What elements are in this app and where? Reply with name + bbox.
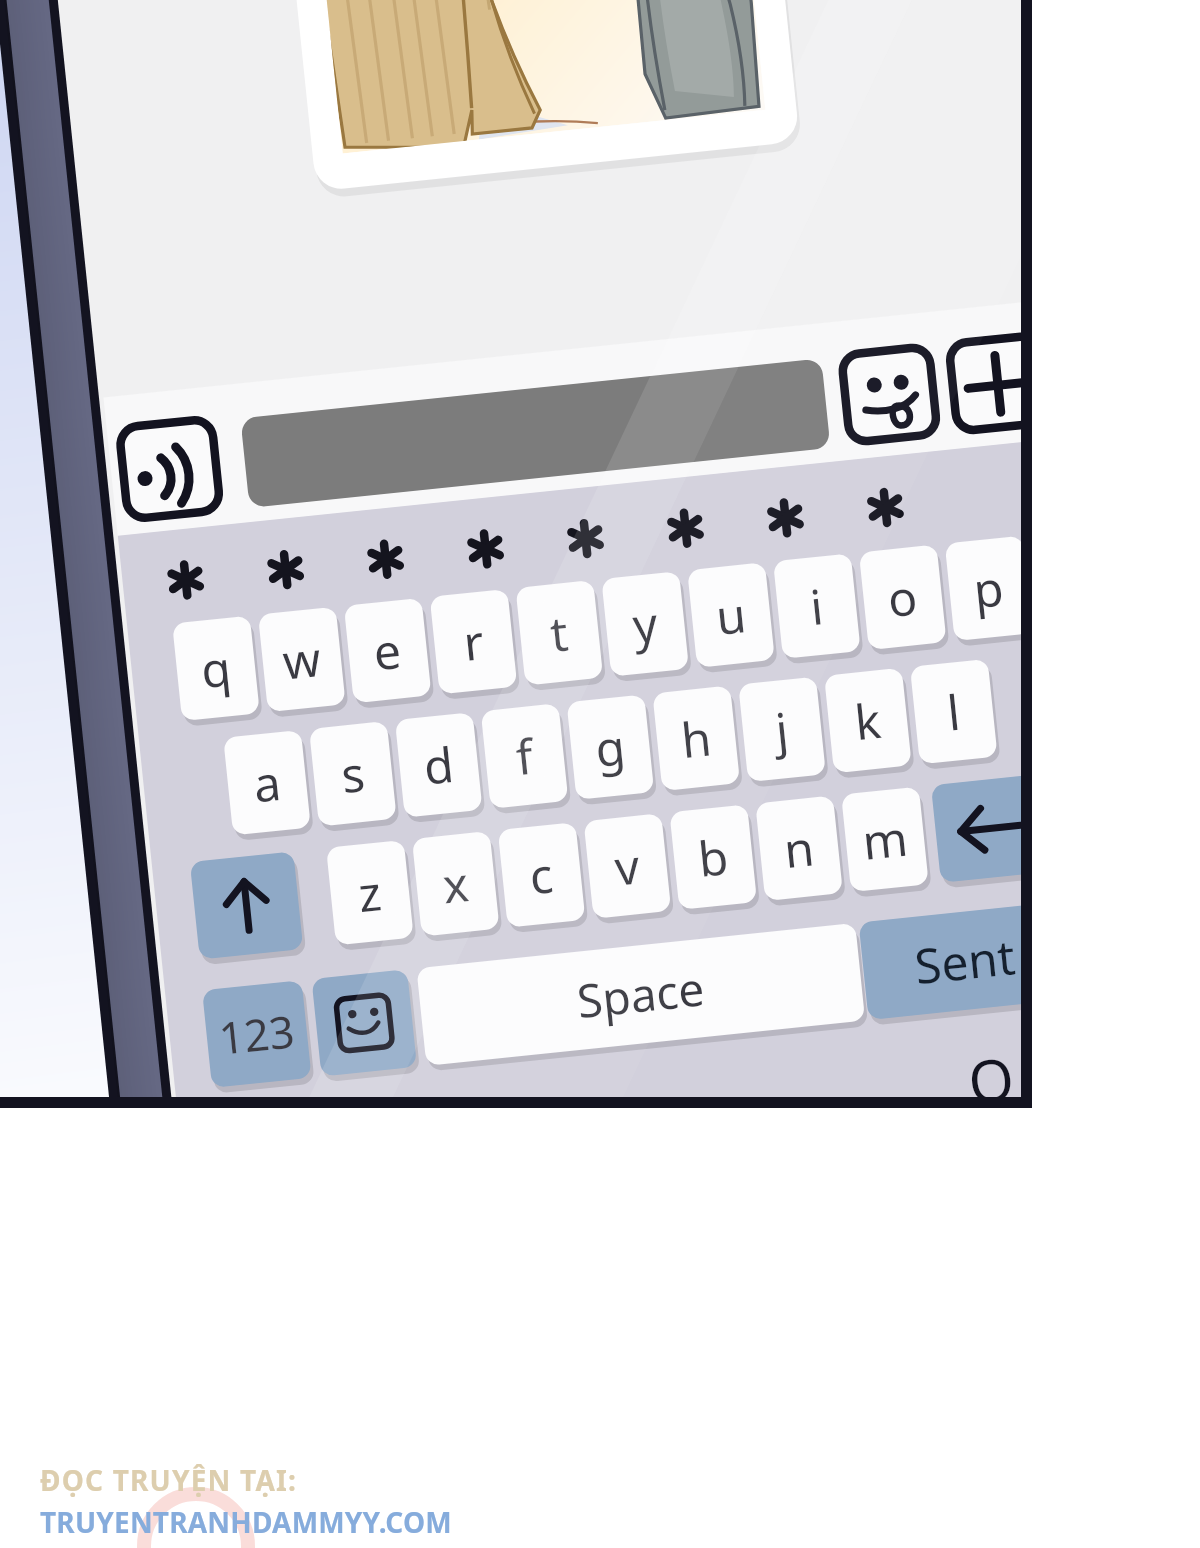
button[interactable]: Comic panel: phone chat screen with keyb… [0,0,1200,1548]
